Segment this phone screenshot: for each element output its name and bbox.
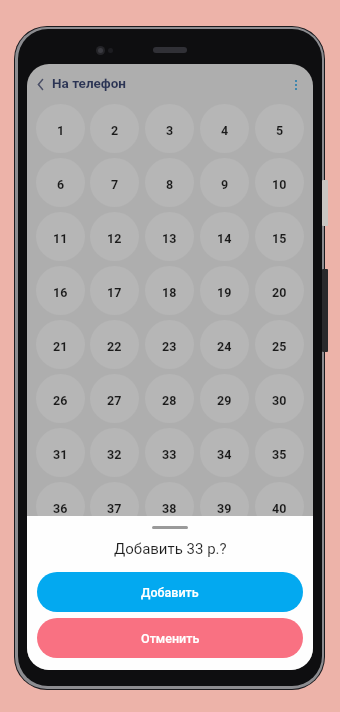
staticText: 5 xyxy=(276,123,284,138)
staticText: 7 xyxy=(111,177,119,192)
button[interactable]: 19 xyxy=(200,266,249,315)
button[interactable]: 8 xyxy=(145,158,194,207)
button[interactable]: 22 xyxy=(90,320,139,369)
button[interactable]: 7 xyxy=(90,158,139,207)
staticText: 40 xyxy=(272,501,287,516)
button[interactable]: 36 xyxy=(36,482,85,531)
button[interactable]: 20 xyxy=(255,266,304,315)
staticText: 26 xyxy=(53,393,68,408)
staticText: 17 xyxy=(107,285,122,300)
staticText: На телефон xyxy=(52,75,127,91)
staticText: 31 xyxy=(53,447,68,462)
button[interactable]: 16 xyxy=(36,266,85,315)
button[interactable]: 41 xyxy=(36,536,85,585)
staticText: 1 xyxy=(57,123,65,138)
staticText: 13 xyxy=(162,231,177,246)
staticText: 8 xyxy=(166,177,174,192)
button[interactable]: 30 xyxy=(255,374,304,423)
button[interactable]: 17 xyxy=(90,266,139,315)
button[interactable]: 38 xyxy=(145,482,194,531)
staticText: 20 xyxy=(272,285,287,300)
staticText: 30 xyxy=(272,393,287,408)
staticText: 29 xyxy=(217,393,232,408)
staticText: 32 xyxy=(107,447,122,462)
button[interactable]: 35 xyxy=(255,428,304,477)
button[interactable]: 27 xyxy=(90,374,139,423)
staticText: 19 xyxy=(217,285,232,300)
staticText: 34 xyxy=(217,447,232,462)
button[interactable]: 45 xyxy=(255,536,304,585)
staticText: 25 xyxy=(272,339,287,354)
staticText: 37 xyxy=(107,501,122,516)
staticText: 23 xyxy=(162,339,177,354)
button[interactable]: Добавить xyxy=(37,572,303,612)
staticText: 16 xyxy=(53,285,68,300)
staticText: 12 xyxy=(107,231,122,246)
button[interactable]: 26 xyxy=(36,374,85,423)
button[interactable]: 2 xyxy=(90,104,139,153)
button[interactable]: 32 xyxy=(90,428,139,477)
button[interactable]: 11 xyxy=(36,212,85,261)
staticText: 33 xyxy=(162,447,177,462)
staticText: 14 xyxy=(217,231,232,246)
staticText: 4 xyxy=(221,123,229,138)
staticText: Добавить 33 р.? xyxy=(114,540,227,558)
button[interactable]: 39 xyxy=(200,482,249,531)
staticText: 21 xyxy=(53,339,68,354)
button[interactable]: Back xyxy=(27,71,53,97)
button[interactable]: 31 xyxy=(36,428,85,477)
staticText: 6 xyxy=(57,177,65,192)
button[interactable]: 34 xyxy=(200,428,249,477)
button[interactable]: 40 xyxy=(255,482,304,531)
button[interactable]: 28 xyxy=(145,374,194,423)
staticText: 9 xyxy=(221,177,229,192)
button[interactable]: 4 xyxy=(200,104,249,153)
button[interactable]: 5 xyxy=(255,104,304,153)
button[interactable]: Отменить xyxy=(37,618,303,658)
staticText: 38 xyxy=(162,501,177,516)
button[interactable]: 1 xyxy=(36,104,85,153)
button[interactable]: 25 xyxy=(255,320,304,369)
staticText: 2 xyxy=(111,123,119,138)
button[interactable]: 3 xyxy=(145,104,194,153)
button[interactable]: 9 xyxy=(200,158,249,207)
staticText: 42 xyxy=(107,555,122,570)
button[interactable]: 23 xyxy=(145,320,194,369)
staticText: Добавить xyxy=(141,585,199,600)
button[interactable]: 18 xyxy=(145,266,194,315)
staticText: 22 xyxy=(107,339,122,354)
staticText: 39 xyxy=(217,501,232,516)
button[interactable]: 15 xyxy=(255,212,304,261)
staticText: 15 xyxy=(272,231,287,246)
button[interactable]: More options xyxy=(282,71,310,99)
button[interactable]: 29 xyxy=(200,374,249,423)
button[interactable]: 43 xyxy=(145,536,194,585)
button[interactable]: 6 xyxy=(36,158,85,207)
button[interactable]: 42 xyxy=(90,536,139,585)
staticText: 36 xyxy=(53,501,68,516)
button[interactable]: 44 xyxy=(200,536,249,585)
button[interactable]: 37 xyxy=(90,482,139,531)
staticText: 27 xyxy=(107,393,122,408)
button[interactable]: 10 xyxy=(255,158,304,207)
button[interactable]: 13 xyxy=(145,212,194,261)
button[interactable]: 12 xyxy=(90,212,139,261)
staticText: 28 xyxy=(162,393,177,408)
staticText: 24 xyxy=(217,339,232,354)
staticText: 10 xyxy=(272,177,287,192)
button[interactable]: 33 xyxy=(145,428,194,477)
staticText: Отменить xyxy=(141,631,200,646)
staticText: 3 xyxy=(166,123,174,138)
staticText: 11 xyxy=(53,231,68,246)
button[interactable]: 14 xyxy=(200,212,249,261)
staticText: 18 xyxy=(162,285,177,300)
staticText: 35 xyxy=(272,447,287,462)
button[interactable]: 24 xyxy=(200,320,249,369)
button[interactable]: 21 xyxy=(36,320,85,369)
